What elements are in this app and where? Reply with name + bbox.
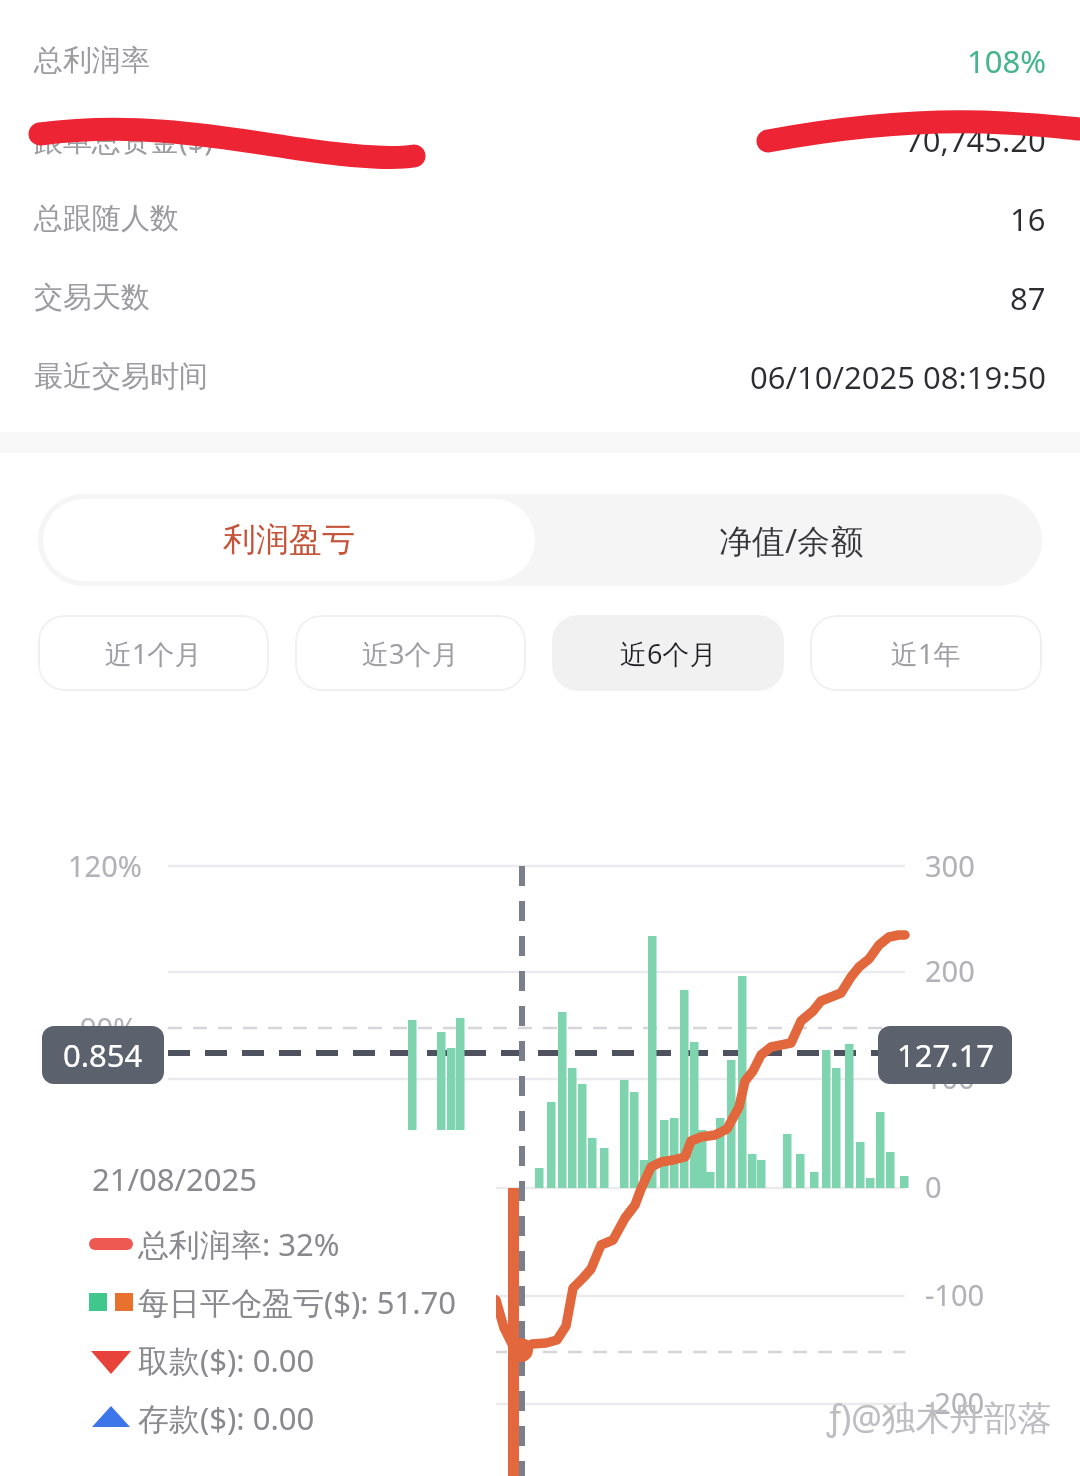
staticText: 利润盈亏 bbox=[223, 519, 355, 561]
staticText: 总利润率 bbox=[34, 42, 150, 79]
button[interactable]: 近3个月 bbox=[295, 615, 526, 691]
staticText: 交易天数 bbox=[34, 279, 150, 316]
staticText: 最近交易时间 bbox=[34, 358, 208, 395]
staticText: 总跟随人数 bbox=[34, 200, 179, 237]
staticText: 127.17 bbox=[897, 1034, 994, 1076]
button[interactable]: 利润盈亏 bbox=[43, 499, 535, 581]
staticText: 16 bbox=[1010, 198, 1046, 240]
button[interactable]: 近1个月 bbox=[38, 615, 269, 691]
button[interactable]: 总跟随人数 bbox=[0, 179, 1080, 258]
staticText: 90% bbox=[80, 1008, 138, 1047]
staticText: -100 bbox=[925, 1275, 985, 1314]
staticText: 108% bbox=[967, 40, 1046, 82]
staticText: 21/08/2025 bbox=[92, 1158, 257, 1200]
staticText: 0 bbox=[925, 1167, 942, 1206]
button[interactable]: 近1年 bbox=[810, 615, 1042, 691]
staticText: 70,745.20 bbox=[905, 119, 1046, 161]
button[interactable]: 总利润率 bbox=[0, 21, 1080, 100]
staticText: 近3个月 bbox=[362, 635, 459, 672]
staticText: 300 bbox=[925, 846, 975, 885]
staticText: 100 bbox=[925, 1058, 975, 1097]
staticText: 06/10/2025 08:19:50 bbox=[750, 356, 1046, 398]
staticText: 存款($): 0.00 bbox=[138, 1397, 315, 1439]
staticText: 0.854 bbox=[63, 1034, 143, 1076]
button[interactable]: 跟单总资金($) bbox=[0, 100, 1080, 179]
staticText: 净值/余额 bbox=[719, 518, 864, 563]
staticText: 近6个月 bbox=[620, 635, 717, 672]
staticText: 近1个月 bbox=[105, 635, 202, 672]
staticText: 200 bbox=[925, 951, 975, 990]
staticText: 取款($): 0.00 bbox=[138, 1339, 315, 1381]
staticText: 总利润率: 32% bbox=[138, 1223, 340, 1265]
staticText: ƒ)@独木舟部落 bbox=[827, 1394, 1052, 1440]
staticText: -200 bbox=[925, 1383, 985, 1422]
staticText: 近1年 bbox=[891, 635, 961, 672]
button[interactable]: 最近交易时间 bbox=[0, 337, 1080, 416]
button[interactable]: 交易天数 bbox=[0, 258, 1080, 337]
button[interactable]: 净值/余额 bbox=[540, 494, 1042, 586]
staticText: 120% bbox=[68, 846, 142, 885]
staticText: 跟单总资金($) bbox=[34, 120, 213, 160]
staticText: 每日平仓盈亏($): 51.70 bbox=[138, 1281, 456, 1323]
staticText: 87 bbox=[1010, 277, 1046, 319]
button[interactable]: 近6个月 bbox=[552, 615, 784, 691]
